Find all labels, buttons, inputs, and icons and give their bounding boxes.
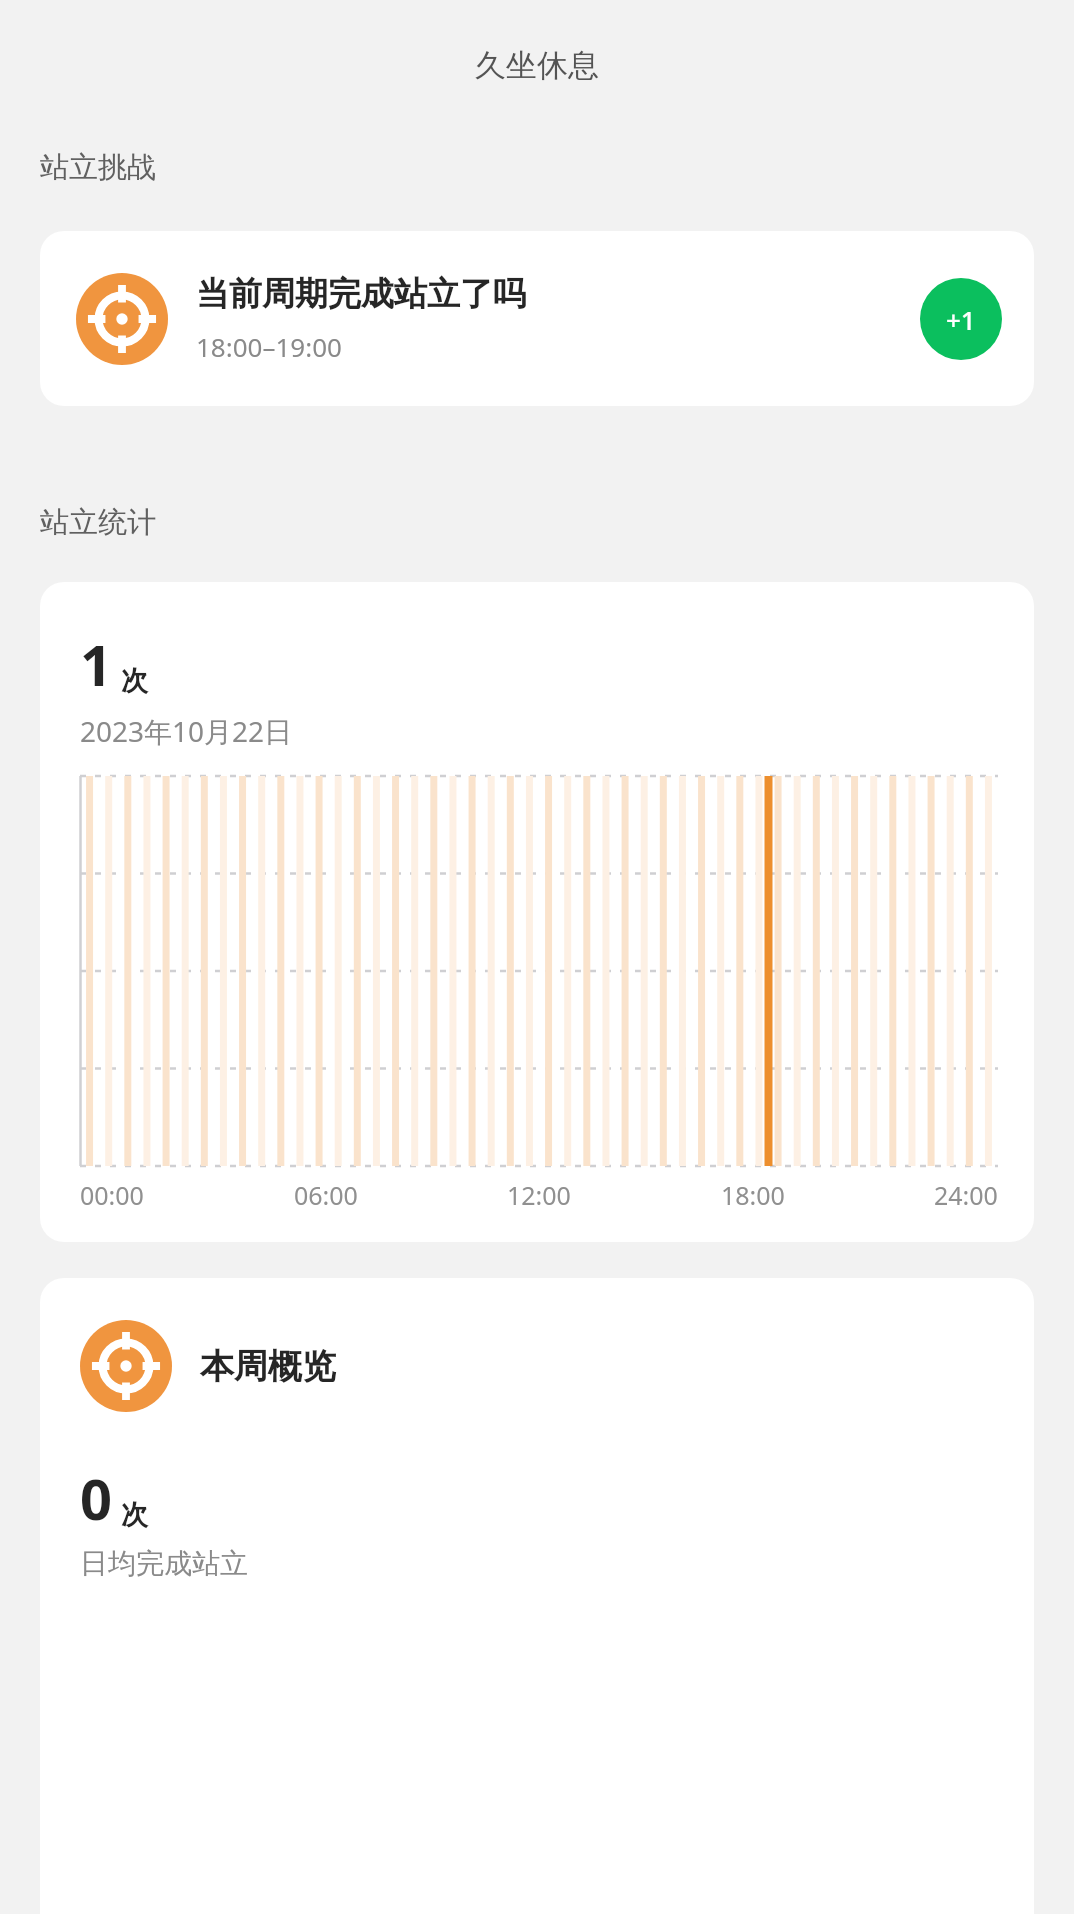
staticText: 0: [80, 1460, 113, 1536]
staticText: 久坐休息: [475, 46, 599, 85]
staticText: 站立挑战: [40, 149, 156, 186]
button[interactable]: 1: [40, 582, 1034, 1242]
staticText: 00:00: [80, 1178, 144, 1212]
other: Stand goal: [80, 1320, 172, 1412]
staticText: 当前周期完成站立了吗: [196, 273, 526, 315]
staticText: 18:00–19:00: [196, 329, 342, 364]
button[interactable]: Stand goal: [40, 1278, 1034, 1914]
staticText: 次: [121, 664, 148, 698]
staticText: 本周概览: [200, 1345, 336, 1388]
staticText: 12:00: [507, 1178, 571, 1212]
button[interactable]: Stand goal: [40, 231, 1034, 406]
staticText: 24:00: [934, 1178, 998, 1212]
staticText: 06:00: [294, 1178, 358, 1212]
staticText: 站立统计: [40, 504, 156, 541]
staticText: +1: [946, 302, 976, 337]
staticText: 2023年10月22日: [80, 712, 293, 750]
staticText: 日均完成站立: [80, 1546, 248, 1581]
other: Stand goal: [76, 273, 168, 365]
staticText: 1: [80, 626, 113, 702]
button[interactable]: +1: [920, 278, 1002, 360]
staticText: 18:00: [721, 1178, 785, 1212]
staticText: 次: [121, 1498, 148, 1532]
